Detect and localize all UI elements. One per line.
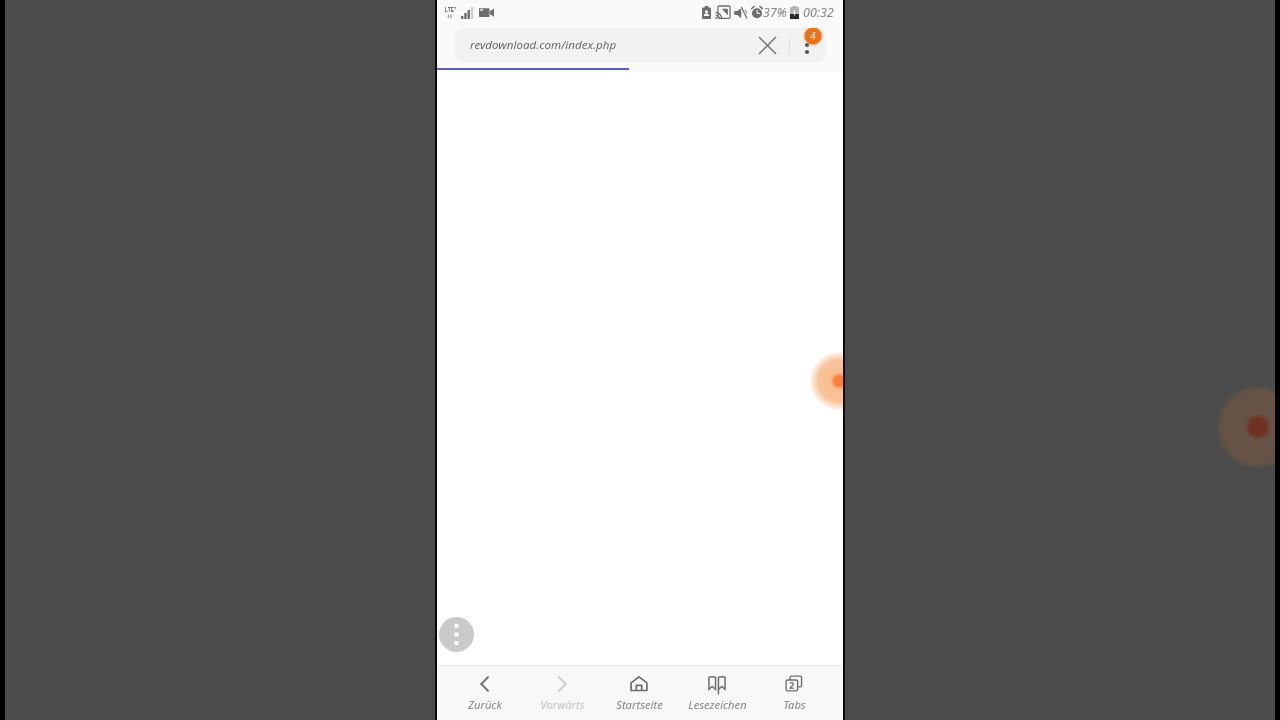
staticText: Tabs xyxy=(783,697,806,712)
button[interactable]: Menu xyxy=(790,28,826,62)
button[interactable]: Tabs xyxy=(756,666,832,720)
button[interactable]: Stop loading xyxy=(745,28,789,62)
staticText: Vorwärts xyxy=(540,697,585,712)
button[interactable]: Vorwärts xyxy=(524,666,600,720)
staticText: Lesezeichen xyxy=(688,697,747,712)
staticText: 4 xyxy=(810,29,816,43)
button[interactable]: Zurück xyxy=(447,666,523,720)
button[interactable]: Lesezeichen xyxy=(679,666,755,720)
button[interactable]: More options xyxy=(439,617,474,652)
staticText: Startseite xyxy=(616,697,663,712)
staticText: Zurück xyxy=(468,697,502,712)
button[interactable]: Startseite xyxy=(601,666,677,720)
staticText: 37% xyxy=(763,4,787,21)
staticText: 00:32 xyxy=(803,4,834,21)
staticText: revdownload.com/index.php xyxy=(470,37,745,53)
button[interactable]: revdownload.com/index.php xyxy=(455,28,826,62)
